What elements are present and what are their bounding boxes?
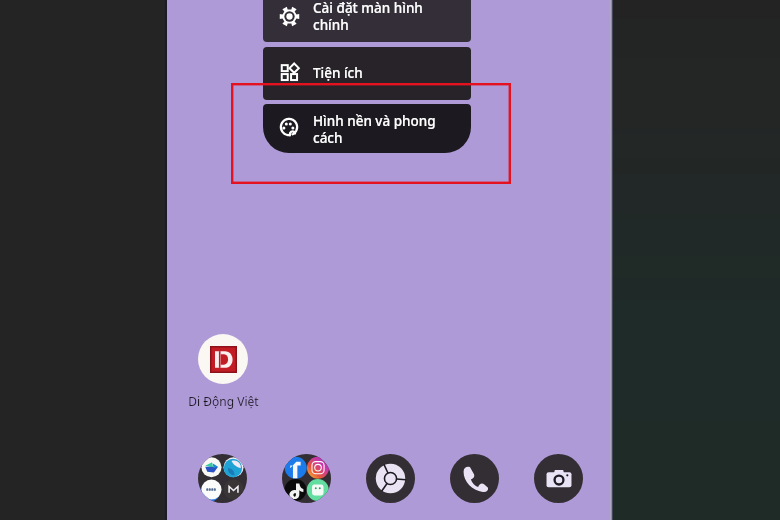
button[interactable]: Chrome bbox=[366, 454, 415, 503]
button[interactable]: Folder with Drive and Gmail bbox=[198, 454, 247, 503]
button[interactable]: Hình nền và phong cách bbox=[263, 104, 471, 153]
button[interactable]: Cài đặt màn hình chính bbox=[263, 0, 471, 42]
button[interactable]: Camera bbox=[534, 454, 583, 503]
staticText: Di Động Việt bbox=[188, 393, 259, 409]
staticText: Hình nền và phong cách bbox=[313, 112, 441, 147]
button[interactable]: Phone bbox=[450, 454, 499, 503]
staticText: Tiện ích bbox=[313, 64, 363, 82]
staticText: Cài đặt màn hình chính bbox=[313, 0, 441, 34]
button[interactable]: Di Động Việt bbox=[173, 334, 273, 409]
button[interactable]: Social apps folder bbox=[282, 454, 331, 503]
button[interactable]: Tiện ích bbox=[263, 47, 471, 100]
